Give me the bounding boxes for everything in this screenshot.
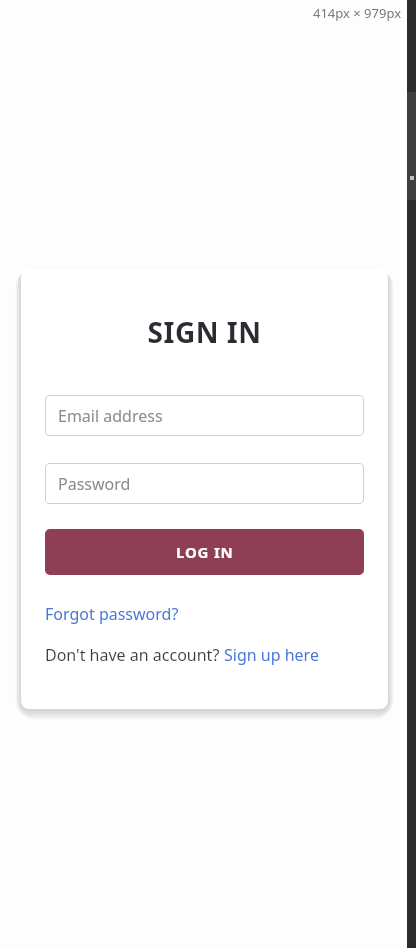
staticText: Forgot password?	[45, 603, 179, 625]
staticText: Don't have an account?	[45, 644, 224, 666]
staticText: Sign up here	[224, 644, 319, 666]
button[interactable]: Password	[45, 463, 364, 504]
staticText: Email address	[58, 405, 163, 427]
staticText: Password	[58, 473, 131, 495]
button[interactable]: LOG IN	[45, 529, 364, 575]
button[interactable]: Sign up here	[224, 644, 319, 666]
staticText: LOG IN	[176, 542, 234, 562]
button[interactable]: Forgot password?	[45, 603, 179, 625]
staticText: 414px × 979px	[313, 4, 402, 22]
other: Scrollbar	[407, 0, 416, 948]
button[interactable]: Email address	[45, 395, 364, 436]
staticText: SIGN IN	[45, 313, 364, 351]
